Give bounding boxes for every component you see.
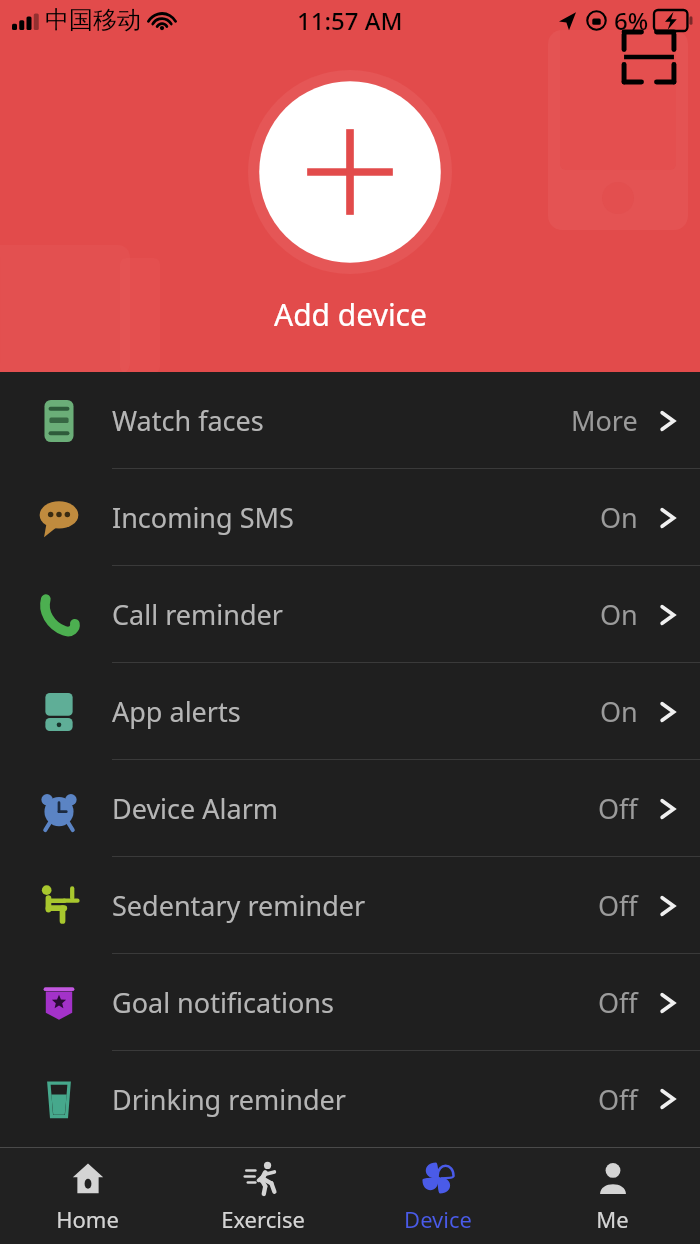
staticText: Off [598,1081,638,1118]
staticText: Exercise [221,1204,305,1234]
staticText: Off [598,887,638,924]
staticText: Add device [274,294,427,335]
button[interactable]: Add device [248,70,452,335]
button[interactable]: Exercise [175,1148,350,1244]
staticText: On [600,693,638,730]
staticText: Home [56,1204,119,1234]
staticText: App alerts [112,693,241,730]
button[interactable]: Sedentary reminder [0,857,700,954]
button[interactable]: Device [350,1148,525,1244]
staticText: Off [598,984,638,1021]
staticText: Me [596,1204,629,1234]
staticText: Goal notifications [112,984,334,1021]
staticText: 6% [614,4,649,37]
staticText: On [600,499,638,536]
staticText: More [571,402,638,439]
button[interactable]: Drinking reminder [0,1051,700,1147]
button[interactable]: Incoming SMS [0,469,700,566]
button[interactable]: Goal notifications [0,954,700,1051]
staticText: On [600,596,638,633]
staticText: Watch faces [112,402,264,439]
staticText: Off [598,790,638,827]
staticText: 11:57 AM [297,4,403,37]
staticText: Incoming SMS [112,499,294,536]
staticText: 中国移动 [45,5,141,35]
staticText: Sedentary reminder [112,887,366,924]
staticText: Device [404,1204,472,1234]
button[interactable]: Home [0,1148,175,1244]
button[interactable]: Watch faces [0,372,700,469]
staticText: Device Alarm [112,790,279,827]
button[interactable]: App alerts [0,663,700,760]
button[interactable]: Device Alarm [0,760,700,857]
button[interactable]: Call reminder [0,566,700,663]
button[interactable]: Scan QR code [620,28,678,86]
button[interactable]: Me [525,1148,700,1244]
staticText: Call reminder [112,596,283,633]
staticText: Drinking reminder [112,1081,346,1118]
